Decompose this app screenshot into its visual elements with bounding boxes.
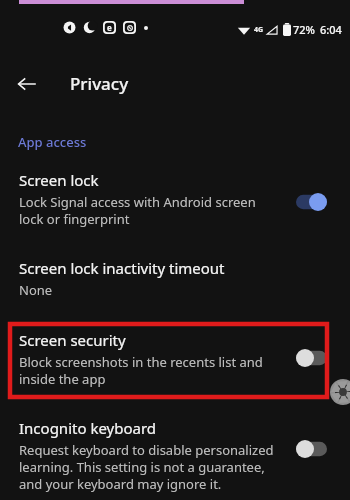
staticText: Screen security [19,330,126,350]
staticText: Incognito keyboard [19,418,157,438]
button[interactable]: Screen lock inactivity timeout [0,258,350,318]
staticText: Request keyboard to disable personalized… [19,441,274,493]
staticText: None [19,281,53,299]
button[interactable]: Toggle off [296,349,327,367]
staticText: Screen lock inactivity timeout [19,258,225,278]
staticText: Lock Signal access with Android screen l… [19,193,256,228]
staticText: App access [18,133,87,151]
button[interactable]: Toggle off [296,440,327,458]
staticText: ⦸ [125,22,135,33]
staticText: 4G [254,25,264,35]
staticText: e [107,22,112,33]
staticText: Screen lock [19,170,99,190]
button[interactable]: Screen lock [0,170,350,254]
staticText: Privacy [70,72,129,95]
staticText: 72% [293,22,315,37]
button[interactable]: Back [10,67,44,101]
staticText: Block screenshots in the recents list an… [19,353,263,388]
button[interactable]: Toggle on [296,193,327,211]
button[interactable]: Incognito keyboard [0,418,350,498]
staticText: 6:04 [320,22,342,37]
button[interactable]: Screen security [0,330,350,396]
